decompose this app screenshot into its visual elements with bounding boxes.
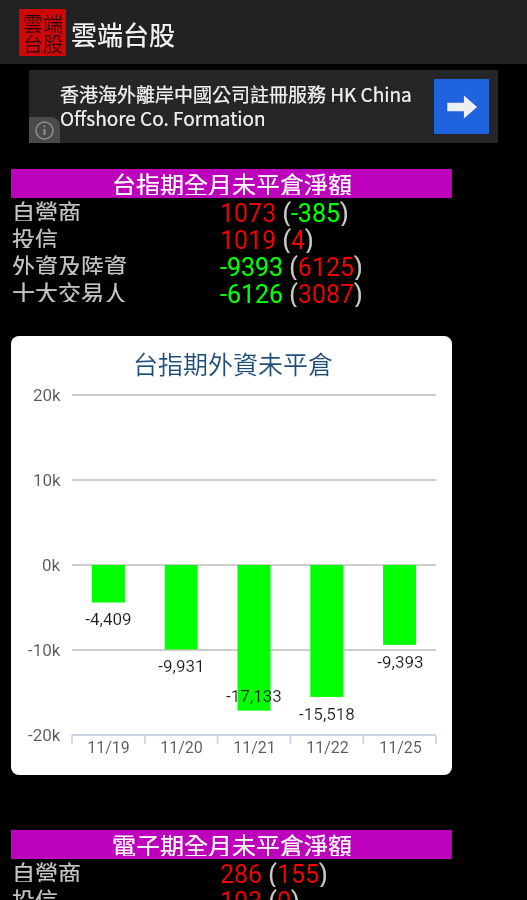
staticText: -9,393 <box>377 652 424 672</box>
staticText: -10k <box>28 640 61 660</box>
button[interactable]: 自營商 <box>0 860 441 887</box>
staticText: 台指期外資未平倉 <box>133 345 334 381</box>
staticText: 香港海外離岸中國公司註冊服務 HK China <box>60 80 412 108</box>
staticText: 1019 (4) <box>220 226 314 253</box>
staticText: 1073 (-385) <box>220 199 349 226</box>
staticText: 11/20 <box>160 738 203 757</box>
staticText: Offshore Co. Formation <box>60 104 266 132</box>
button[interactable]: App logo <box>19 9 66 56</box>
staticText: 0k <box>42 555 61 575</box>
staticText: 台指期全月未平倉淨額 <box>112 166 352 195</box>
staticText: 11/19 <box>87 738 130 757</box>
staticText: -9,931 <box>158 656 205 676</box>
button[interactable]: 電子期全月未平倉淨額 <box>11 830 452 859</box>
staticText: -20k <box>28 725 61 745</box>
staticText: 雲端台股 <box>71 15 176 53</box>
button[interactable]: Ad information <box>29 117 60 143</box>
staticText: 11/25 <box>379 738 422 757</box>
staticText: 11/21 <box>233 738 276 757</box>
button[interactable]: Open advertisement <box>434 79 489 134</box>
staticText: 電子期全月未平倉淨額 <box>112 827 352 856</box>
button[interactable]: 投信 <box>0 887 441 900</box>
staticText: -15,518 <box>299 704 355 724</box>
staticText: 286 (155) <box>220 860 328 887</box>
button[interactable]: 投信 <box>0 226 441 253</box>
staticText: -9393 (6125) <box>220 253 363 280</box>
staticText: 11/22 <box>306 738 349 757</box>
staticText: 雲端 台股 <box>23 9 63 56</box>
button[interactable]: 台指期全月未平倉淨額 <box>11 169 452 198</box>
button[interactable]: 香港海外離岸中國公司註冊服務 HK China <box>29 70 498 143</box>
staticText: 自營商 <box>12 194 81 221</box>
button[interactable]: 外資及陸資 <box>0 253 441 280</box>
staticText: 10k <box>33 470 61 490</box>
staticText: 自營商 <box>12 855 81 882</box>
staticText: 外資及陸資 <box>12 248 127 275</box>
staticText: 投信 <box>12 221 58 248</box>
button[interactable]: 十大交易人 <box>0 280 441 307</box>
staticText: -17,133 <box>226 686 282 706</box>
staticText: 十大交易人 <box>12 275 127 302</box>
button[interactable]: 自營商 <box>0 199 441 226</box>
staticText: 103 (0) <box>220 887 300 900</box>
staticText: -6126 (3087) <box>220 280 363 307</box>
staticText: -4,409 <box>85 609 132 629</box>
staticText: 20k <box>33 385 61 405</box>
button[interactable]: 台指期外資未平倉 <box>11 336 452 775</box>
staticText: 投信 <box>12 882 58 900</box>
